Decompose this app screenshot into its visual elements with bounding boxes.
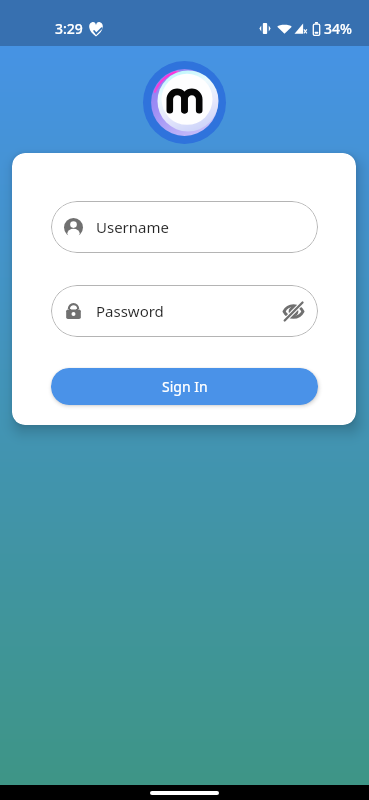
staticText: 34% [324,19,352,38]
button[interactable]: Sign In [51,368,318,405]
staticText: 3:29 [55,19,83,38]
staticText: Username [96,217,169,237]
button[interactable]: Username [51,201,318,253]
button[interactable]: Show password [283,301,304,322]
staticText: Sign In [162,377,208,396]
staticText: Password [96,301,164,321]
button[interactable]: Password [51,285,318,337]
